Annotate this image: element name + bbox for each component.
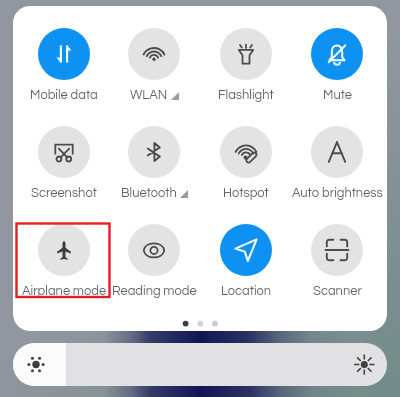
button[interactable]: WLAN bbox=[108, 27, 200, 101]
staticText: Flashlight bbox=[218, 88, 274, 101]
button[interactable]: Airplane mode bbox=[18, 223, 110, 297]
staticText: Airplane mode bbox=[22, 284, 107, 297]
staticText: Hotspot bbox=[223, 186, 269, 199]
staticText: Scanner bbox=[313, 284, 362, 297]
button[interactable]: Scanner bbox=[291, 223, 383, 297]
button[interactable]: Auto brightness bbox=[291, 125, 383, 199]
button[interactable]: Flashlight bbox=[200, 27, 292, 101]
staticText: Auto brightness bbox=[292, 186, 383, 199]
button[interactable]: Mobile data bbox=[18, 27, 110, 101]
button[interactable]: Location bbox=[200, 223, 292, 297]
staticText: Mobile data bbox=[30, 88, 98, 101]
button[interactable]: Reading mode bbox=[108, 223, 200, 297]
staticText: Location bbox=[221, 284, 272, 297]
staticText: Screenshot bbox=[31, 186, 97, 199]
button[interactable]: Mute bbox=[291, 27, 383, 101]
staticText: Mute bbox=[323, 88, 352, 101]
button[interactable]: Hotspot bbox=[200, 125, 292, 199]
staticText: WLAN bbox=[130, 88, 168, 101]
staticText: Reading mode bbox=[112, 284, 197, 297]
button[interactable]: Bluetooth bbox=[108, 125, 200, 199]
button[interactable]: Screenshot bbox=[18, 125, 110, 199]
button[interactable]: Brightness bbox=[13, 343, 387, 386]
staticText: Bluetooth bbox=[121, 186, 177, 199]
